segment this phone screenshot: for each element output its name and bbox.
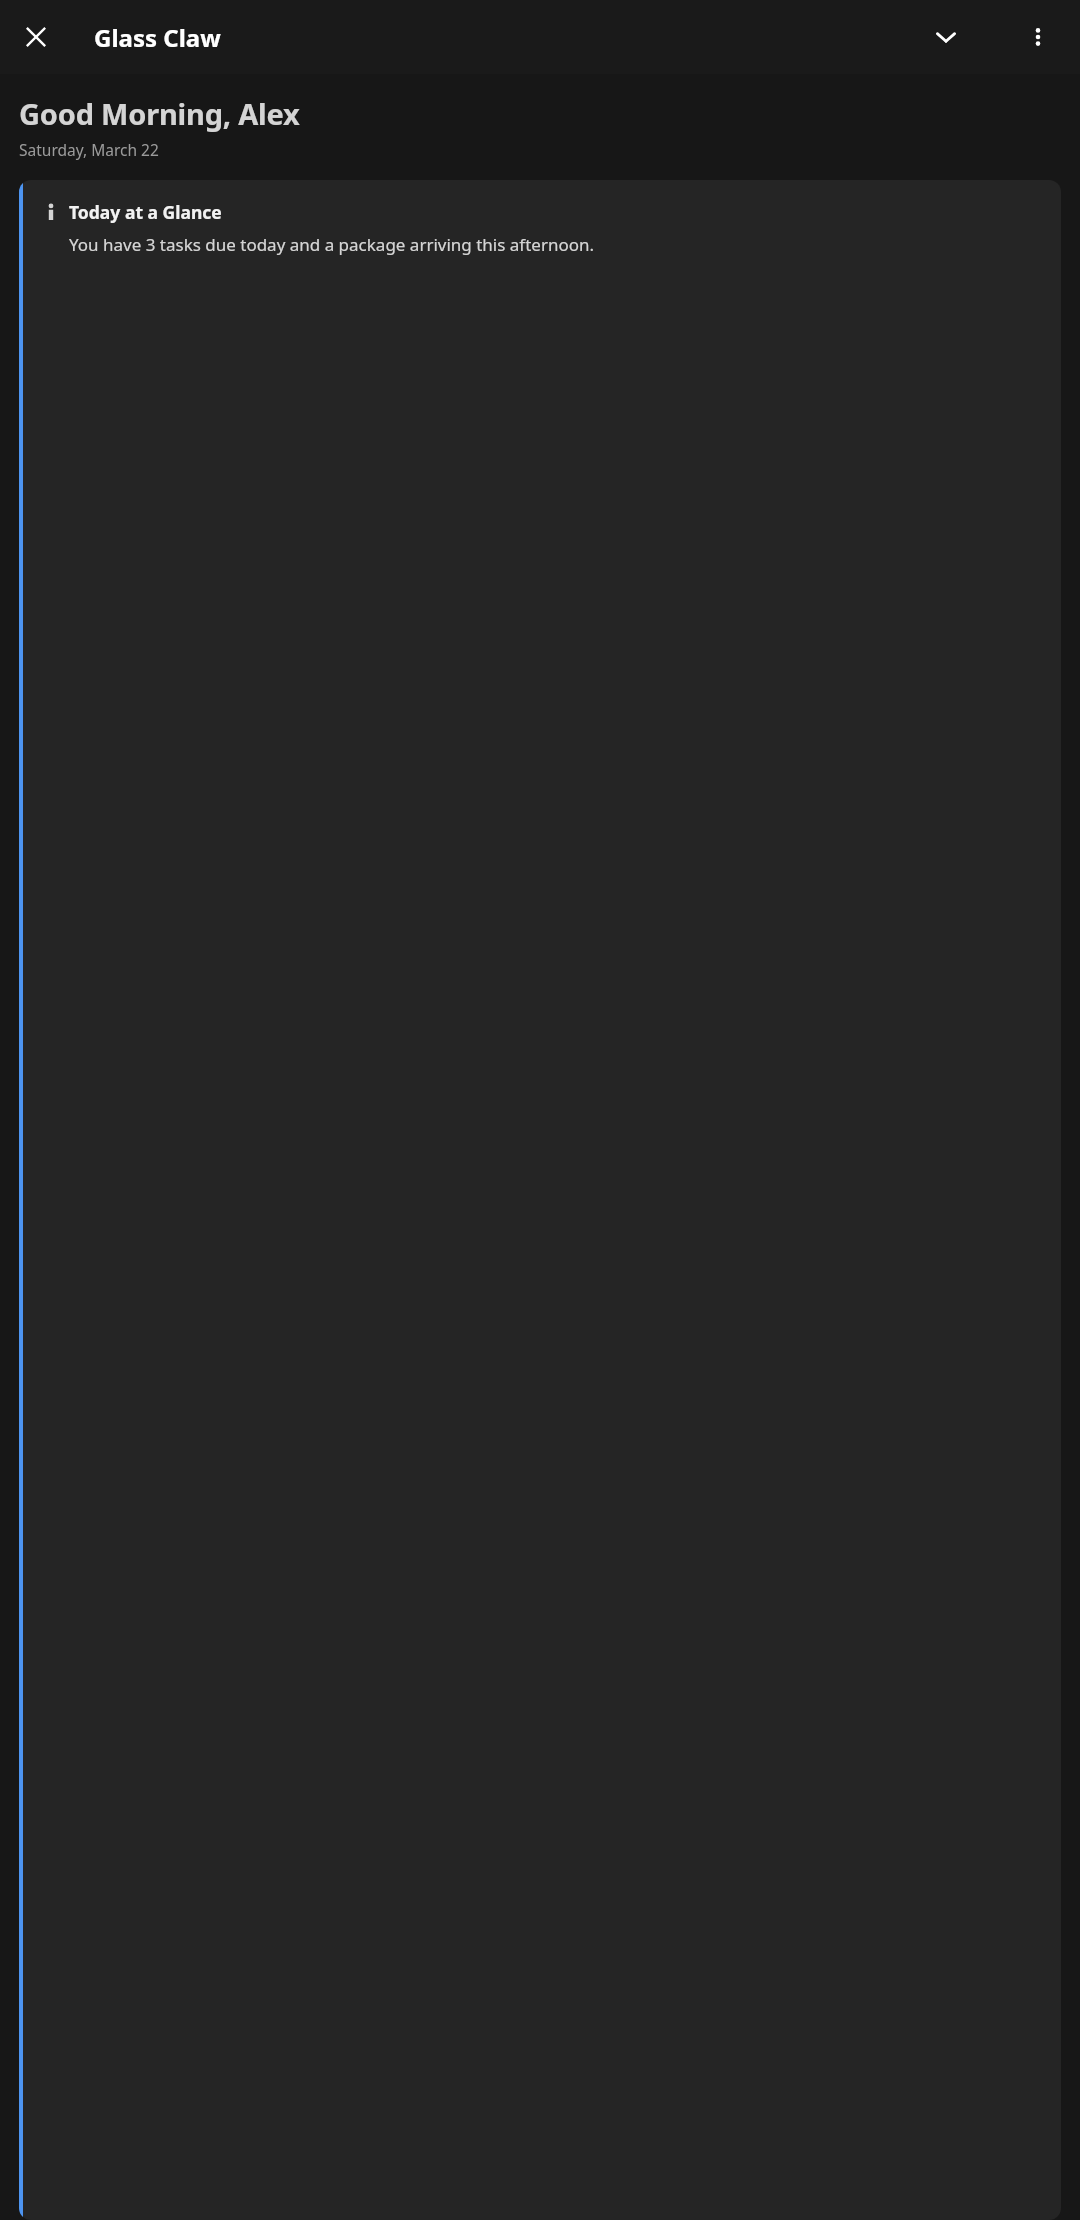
staticText: Saturday, March 22: [19, 139, 159, 160]
button[interactable]: Close: [12, 13, 60, 61]
button[interactable]: Today at a Glance: [19, 180, 1061, 2220]
staticText: You have 3 tasks due today and a package…: [69, 233, 595, 256]
button[interactable]: Expand: [922, 13, 970, 61]
button[interactable]: More options: [1014, 13, 1062, 61]
staticText: Today at a Glance: [69, 200, 222, 224]
staticText: Good Morning, Alex: [19, 94, 300, 133]
staticText: Glass Claw: [94, 21, 221, 54]
